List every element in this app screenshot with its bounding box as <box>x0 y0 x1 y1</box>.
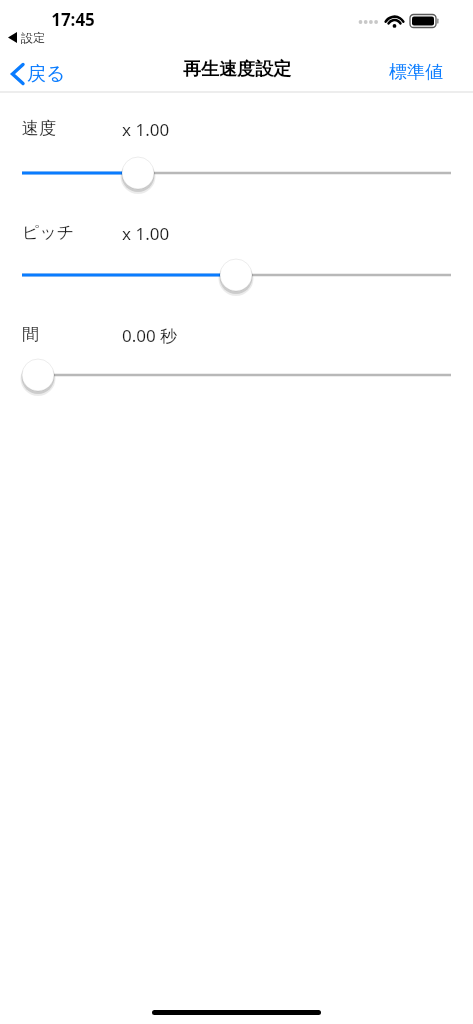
button[interactable]: 間 スライダー <box>0 353 473 397</box>
staticText: 間 <box>22 324 39 345</box>
staticText: 標準値 <box>389 61 443 84</box>
button[interactable]: 設定 <box>8 30 45 45</box>
button[interactable]: 速度 スライダー <box>0 151 473 195</box>
staticText: 設定 <box>21 30 45 45</box>
staticText: 戻る <box>27 62 66 86</box>
button[interactable]: 戻る <box>10 56 66 92</box>
staticText: x 1.00 <box>122 222 170 245</box>
staticText: 速度 <box>22 118 56 139</box>
button[interactable]: 標準値 <box>389 56 443 88</box>
staticText: ピッチ <box>22 222 75 243</box>
staticText: 0.00 秒 <box>122 324 178 347</box>
staticText: 再生速度設定 <box>183 58 291 81</box>
staticText: 17:45 <box>38 8 108 31</box>
staticText: x 1.00 <box>122 118 170 141</box>
button[interactable]: ピッチ スライダー <box>0 253 473 297</box>
